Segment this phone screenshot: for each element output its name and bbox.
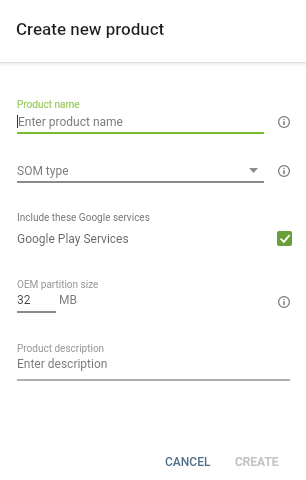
staticText: OEM partition size [17,279,99,291]
staticText: MB [59,293,77,307]
staticText: Product name [17,99,80,111]
button[interactable] [16,158,264,184]
staticText: 32 [17,293,31,307]
staticText: CANCEL [165,455,211,469]
button[interactable]: More information [272,110,296,134]
staticText: Include these Google services [17,212,150,224]
staticText: Enter description [17,357,108,371]
button[interactable]: More information [272,290,296,314]
staticText: CREATE [235,455,279,469]
button[interactable] [8,228,298,250]
staticText: Create new product [16,19,165,39]
staticText: Product description [17,343,105,355]
button[interactable]: CREATE [224,448,290,476]
button[interactable]: More information [272,159,296,183]
staticText: SOM type [17,164,69,178]
staticText: Google Play Services [17,232,129,246]
button[interactable]: CANCEL [154,448,222,476]
staticText: Enter product name [18,115,123,129]
